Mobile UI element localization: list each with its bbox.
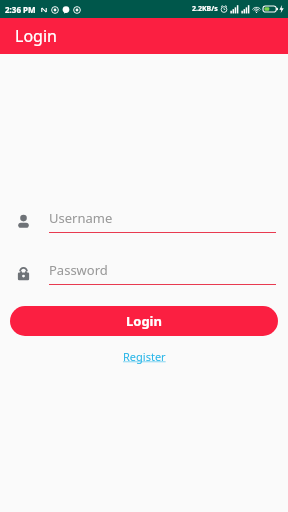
staticText: Login xyxy=(126,312,162,330)
staticText: Register xyxy=(123,349,166,364)
button[interactable]: Username xyxy=(12,205,276,237)
staticText: Login xyxy=(15,25,57,47)
button[interactable]: Password xyxy=(12,257,276,289)
button[interactable]: Register xyxy=(117,347,172,366)
staticText: 2:36 PM xyxy=(5,4,36,15)
button[interactable]: Login xyxy=(10,306,278,336)
staticText: Username xyxy=(49,209,113,227)
staticText: 2.2KB/s xyxy=(192,4,218,14)
staticText: Password xyxy=(49,261,108,279)
